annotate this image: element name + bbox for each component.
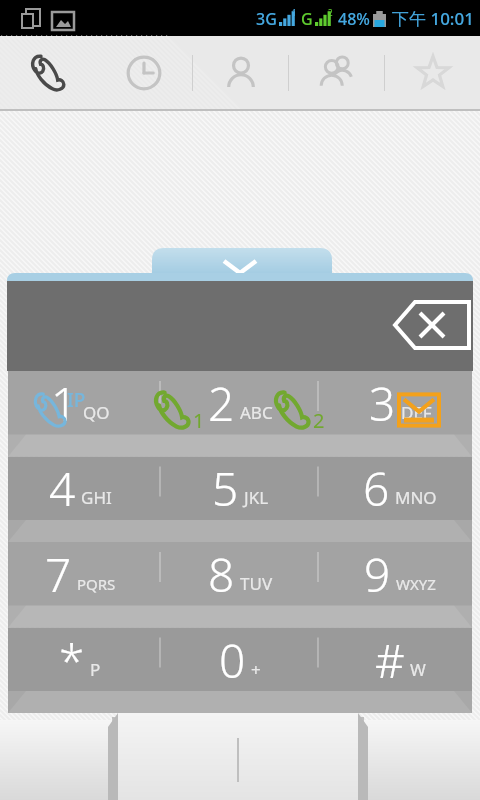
- button[interactable]: 1: [0, 371, 160, 456]
- staticText: 2: [328, 7, 333, 18]
- staticText: 5: [212, 457, 239, 520]
- button[interactable]: 9: [320, 541, 480, 627]
- button[interactable]: *: [0, 627, 160, 713]
- staticText: 9: [364, 543, 391, 606]
- staticText: P: [90, 658, 101, 681]
- staticText: G: [301, 8, 313, 30]
- staticText: *: [59, 629, 85, 692]
- staticText: QO: [83, 401, 110, 424]
- button[interactable]: 5: [160, 456, 320, 541]
- staticText: TUV: [240, 572, 273, 595]
- staticText: 2: [208, 372, 235, 435]
- button[interactable]: 4: [0, 456, 160, 541]
- staticText: 6: [363, 457, 390, 520]
- staticText: 3: [369, 372, 396, 435]
- button[interactable]: IP call: [0, 0, 118, 800]
- staticText: 7: [45, 543, 72, 606]
- staticText: GHI: [81, 486, 112, 509]
- staticText: 下午 10:01: [392, 7, 474, 30]
- button[interactable]: Tab: [193, 36, 288, 110]
- staticText: WXYZ: [396, 574, 436, 594]
- button[interactable]: 0: [160, 627, 320, 713]
- staticText: 8: [208, 543, 235, 606]
- staticText: 2: [313, 407, 325, 434]
- staticText: DEF: [401, 401, 432, 424]
- staticText: 1: [193, 407, 205, 434]
- staticText: 1: [51, 372, 78, 435]
- staticText: ABC: [240, 401, 273, 424]
- button[interactable]: Tab: [385, 36, 480, 110]
- staticText: 3G: [256, 8, 277, 30]
- button[interactable]: #: [320, 627, 480, 713]
- staticText: #: [375, 629, 405, 692]
- button[interactable]: Dialpad: [0, 36, 96, 110]
- button[interactable]: 6: [320, 456, 480, 541]
- button[interactable]: 3: [320, 371, 480, 456]
- button[interactable]: Message: [358, 0, 480, 800]
- staticText: MNO: [395, 486, 437, 509]
- button[interactable]: Tab: [289, 36, 384, 110]
- staticText: 1: [292, 7, 297, 18]
- staticText: JKL: [244, 486, 269, 509]
- button[interactable]: Call SIM 2: [238, 0, 358, 800]
- staticText: 0: [219, 629, 246, 692]
- button[interactable]: 2: [160, 371, 320, 456]
- staticText: +: [251, 658, 261, 681]
- button[interactable]: 8: [160, 541, 320, 627]
- button[interactable]: Call SIM 1: [118, 0, 238, 800]
- staticText: 48%: [338, 8, 370, 30]
- staticText: IP: [67, 387, 86, 413]
- button[interactable]: Backspace: [396, 292, 468, 354]
- button[interactable]: Tab: [96, 36, 192, 110]
- button[interactable]: 7: [0, 541, 160, 627]
- staticText: 4: [49, 457, 76, 520]
- staticText: PQRS: [77, 574, 116, 594]
- staticText: W: [410, 658, 426, 681]
